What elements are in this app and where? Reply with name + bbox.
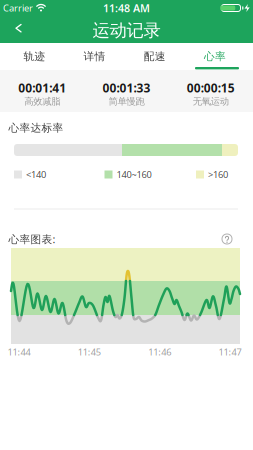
staticText: 11:44: [7, 346, 30, 358]
staticText: 00:01:33: [102, 80, 150, 96]
staticText: 140~160: [116, 168, 151, 181]
staticText: 心率: [204, 50, 226, 63]
staticText: 高效减脂: [24, 96, 60, 107]
staticText: 简单慢跑: [108, 96, 144, 107]
staticText: 心率图表:: [8, 232, 55, 246]
staticText: 心率达标率: [8, 121, 63, 134]
staticText: 00:00:15: [187, 80, 235, 96]
staticText: 11:47: [218, 346, 241, 358]
staticText: 11:45: [78, 346, 101, 358]
staticText: 运动记录: [92, 20, 160, 41]
staticText: 11:46: [148, 346, 171, 358]
button[interactable]: 配速: [125, 43, 185, 70]
staticText: 轨迹: [23, 50, 45, 63]
staticText: 详情: [84, 50, 106, 63]
staticText: 11:48 AM: [103, 1, 150, 15]
staticText: 无氧运动: [193, 96, 229, 107]
button[interactable]: 轨迹: [4, 43, 64, 70]
button[interactable]: Help: [220, 232, 234, 246]
staticText: <140: [26, 168, 46, 181]
staticText: 配速: [144, 50, 166, 63]
staticText: Carrier: [3, 2, 33, 14]
button[interactable]: 详情: [64, 43, 125, 70]
button[interactable]: 心率: [185, 43, 245, 70]
button[interactable]: Back: [0, 20, 30, 43]
staticText: >160: [208, 168, 228, 181]
staticText: 00:01:41: [18, 80, 66, 96]
